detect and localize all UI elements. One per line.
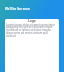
staticText: Lorem ipsum dolor sit amet consectetur a… [6,23,58,38]
staticText: We'll be live soon [5,7,30,11]
staticText: Logo [6,19,58,23]
